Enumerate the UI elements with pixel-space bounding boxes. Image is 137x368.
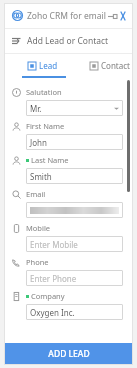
- button[interactable]: Enter Phone: [26, 270, 123, 286]
- button[interactable]: [26, 202, 123, 218]
- staticText: Smith: [30, 171, 52, 182]
- staticText: Last Name: [31, 155, 69, 165]
- staticText: Oxygen Inc.: [30, 307, 75, 318]
- staticText: Zoho CRM for email: [27, 10, 106, 22]
- button[interactable]: Smith: [26, 168, 123, 184]
- staticText: Add Lead or Contact: [27, 35, 109, 47]
- button[interactable]: Add Lead or Contact: [4, 29, 133, 53]
- staticText: Salutation: [26, 87, 62, 97]
- button[interactable]: Pin: [106, 10, 118, 22]
- button[interactable]: Close: [121, 10, 125, 22]
- staticText: Mobile: [26, 223, 51, 233]
- staticText: Phone: [26, 257, 49, 267]
- button[interactable]: Lead: [26, 58, 60, 73]
- button[interactable]: Mr.: [26, 100, 123, 116]
- staticText: Contact: [101, 60, 130, 71]
- staticText: Enter Mobile: [30, 239, 78, 250]
- staticText: Email: [26, 189, 46, 199]
- button[interactable]: John: [26, 134, 123, 150]
- staticText: Enter Phone: [30, 273, 77, 284]
- button[interactable]: ADD LEAD: [4, 343, 133, 365]
- staticText: Lead: [39, 60, 58, 71]
- staticText: Company: [31, 291, 65, 301]
- button[interactable]: Enter Mobile: [26, 236, 123, 252]
- staticText: Mr.: [30, 103, 42, 114]
- staticText: John: [30, 137, 47, 148]
- staticText: ADD LEAD: [48, 348, 90, 360]
- button[interactable]: Oxygen Inc.: [26, 304, 123, 320]
- staticText: First Name: [26, 121, 65, 131]
- button[interactable]: Contact: [88, 58, 132, 73]
